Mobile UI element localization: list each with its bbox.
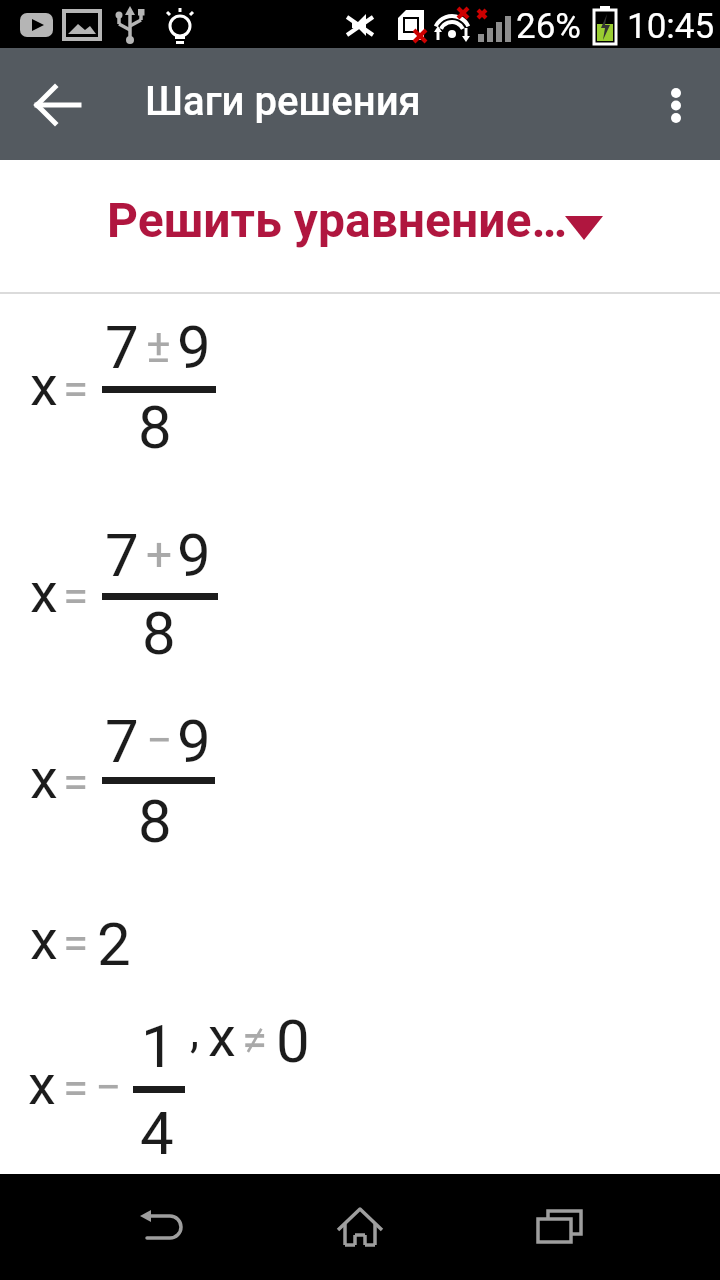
staticText: 9 xyxy=(177,520,211,590)
staticText: 7 xyxy=(105,706,139,776)
staticText: x xyxy=(208,1004,236,1070)
staticText: x xyxy=(28,1052,56,1118)
staticText: ≠ xyxy=(242,1013,268,1067)
button[interactable]: Решить уравнение… xyxy=(90,190,630,260)
staticText: Шаги решения xyxy=(145,78,421,125)
button[interactable] xyxy=(20,74,96,136)
staticText: = xyxy=(63,1061,89,1115)
staticText: − xyxy=(95,1060,122,1114)
staticText: x xyxy=(30,907,58,973)
button[interactable] xyxy=(648,78,704,134)
staticText: 8 xyxy=(138,392,172,462)
staticText: = xyxy=(63,916,89,970)
staticText: x xyxy=(30,353,58,419)
button[interactable] xyxy=(500,1174,620,1280)
staticText: 2 xyxy=(97,909,131,979)
staticText: 4 xyxy=(140,1098,174,1168)
staticText: = xyxy=(63,569,89,623)
staticText: − xyxy=(146,713,173,767)
button[interactable] xyxy=(300,1174,420,1280)
staticText: 9 xyxy=(177,312,211,382)
staticText: = xyxy=(63,362,89,416)
staticText: 7 xyxy=(105,520,139,590)
button[interactable] xyxy=(102,1174,222,1280)
staticText: 8 xyxy=(142,598,176,668)
staticText: 7 xyxy=(105,312,139,382)
staticText: 26% xyxy=(516,6,581,47)
staticText: x xyxy=(30,560,58,626)
staticText: Решить уравнение… xyxy=(107,192,567,248)
staticText: x xyxy=(30,746,58,812)
staticText: , xyxy=(190,1004,200,1058)
staticText: 10:45 xyxy=(627,6,715,47)
staticText: + xyxy=(146,527,173,581)
staticText: 8 xyxy=(138,786,172,856)
staticText: ± xyxy=(146,319,171,373)
staticText: 9 xyxy=(177,706,211,776)
staticText: 1 xyxy=(141,1011,175,1081)
staticText: = xyxy=(63,755,89,809)
staticText: 0 xyxy=(276,1006,310,1076)
